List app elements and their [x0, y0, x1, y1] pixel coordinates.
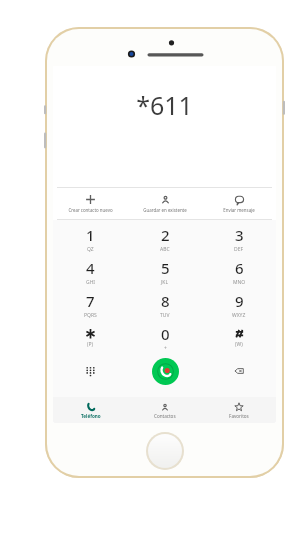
staticText: 8: [161, 291, 170, 311]
staticText: 5: [161, 258, 170, 278]
button[interactable]: Call: [152, 358, 179, 385]
button[interactable]: Crear contacto nuevo: [53, 188, 128, 219]
button[interactable]: Home: [146, 432, 184, 470]
staticText: 3: [235, 225, 244, 245]
button[interactable]: 0: [128, 321, 202, 354]
button[interactable]: Enviar mensaje: [202, 188, 276, 219]
staticText: Favoritos: [229, 413, 249, 419]
staticText: Enviar mensaje: [223, 207, 255, 213]
button[interactable]: 2: [128, 222, 202, 255]
staticText: Crear contacto nuevo: [68, 207, 113, 213]
button[interactable]: 5: [128, 255, 202, 288]
staticText: TUV: [160, 312, 170, 319]
staticText: 2: [161, 225, 170, 245]
staticText: *611: [136, 88, 193, 122]
staticText: 1: [86, 225, 95, 245]
button[interactable]: Hide keypad: [53, 354, 128, 388]
staticText: (W): [235, 341, 243, 348]
staticText: PQRS: [84, 312, 97, 319]
button[interactable]: Contactos: [128, 397, 202, 423]
staticText: +: [164, 345, 167, 352]
button[interactable]: 9: [202, 288, 276, 321]
staticText: DEF: [234, 246, 244, 253]
button[interactable]: (P): [53, 321, 128, 354]
staticText: WXYZ: [232, 312, 246, 319]
staticText: QZ: [87, 246, 94, 253]
button[interactable]: 8: [128, 288, 202, 321]
button[interactable]: 7: [53, 288, 128, 321]
button[interactable]: (W): [202, 321, 276, 354]
staticText: Teléfono: [81, 413, 101, 419]
staticText: ABC: [160, 246, 170, 253]
staticText: JKL: [161, 279, 169, 286]
button[interactable]: 4: [53, 255, 128, 288]
button[interactable]: Backspace: [202, 354, 276, 388]
staticText: Contactos: [154, 413, 176, 419]
staticText: 9: [235, 291, 244, 311]
button[interactable]: 3: [202, 222, 276, 255]
staticText: 7: [86, 291, 95, 311]
button[interactable]: Teléfono: [53, 397, 128, 423]
button[interactable]: 1: [53, 222, 128, 255]
staticText: GHI: [86, 279, 96, 286]
button[interactable]: Favoritos: [202, 397, 276, 423]
button[interactable]: Guardar en existente: [128, 188, 202, 219]
staticText: Guardar en existente: [143, 207, 187, 213]
button[interactable]: 6: [202, 255, 276, 288]
staticText: MNO: [233, 279, 246, 286]
staticText: 0: [161, 324, 170, 344]
staticText: 4: [86, 258, 95, 278]
staticText: (P): [87, 341, 94, 348]
staticText: 6: [235, 258, 244, 278]
